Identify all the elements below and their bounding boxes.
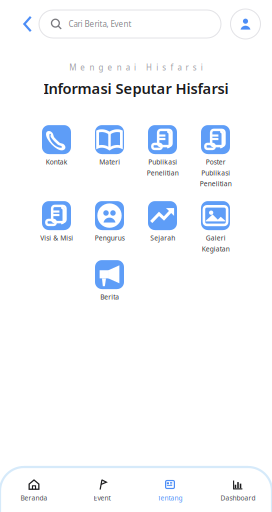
staticText: Visi & Misi — [40, 234, 73, 242]
button[interactable]: Pengurus — [85, 201, 133, 242]
button[interactable]: Kontak — [32, 125, 80, 180]
button[interactable]: Beranda — [0, 479, 68, 502]
button[interactable]: Poster Publikasi Penelitian — [191, 125, 239, 188]
button[interactable]: Berita — [85, 260, 133, 301]
button[interactable]: Dashboard — [204, 479, 272, 502]
staticText: Tentang — [157, 493, 182, 502]
staticText: Publikasi Penelitian — [146, 158, 178, 177]
button[interactable]: Sejarah — [138, 201, 186, 242]
staticText: Pengurus — [94, 234, 124, 242]
button[interactable]: Materi — [85, 125, 133, 180]
button[interactable]: Event — [68, 479, 136, 502]
staticText: Event — [93, 493, 110, 502]
staticText: Beranda — [20, 493, 47, 502]
staticText: Poster Publikasi Penelitian — [199, 158, 231, 188]
button[interactable]: Publikasi Penelitian — [138, 125, 186, 180]
staticText: Informasi Seputar Hisfarsi — [43, 79, 228, 98]
staticText: Dashboard — [220, 493, 255, 502]
staticText: Sejarah — [150, 234, 175, 242]
staticText: Materi — [99, 158, 120, 166]
button[interactable]: Visi & Misi — [32, 201, 80, 242]
staticText: Galeri Kegiatan — [201, 234, 229, 253]
staticText: Cari Berita, Event — [68, 19, 131, 29]
button[interactable]: Back — [16, 9, 39, 39]
button[interactable]: Tentang — [136, 479, 204, 502]
button[interactable]: Galeri Kegiatan — [191, 201, 239, 253]
staticText: Berita — [100, 293, 119, 301]
staticText: Mengenai Hisfarsi — [69, 62, 203, 73]
button[interactable]: Profile — [230, 9, 260, 39]
button[interactable]: Cari Berita, Event — [39, 10, 221, 38]
staticText: Kontak — [45, 158, 67, 166]
